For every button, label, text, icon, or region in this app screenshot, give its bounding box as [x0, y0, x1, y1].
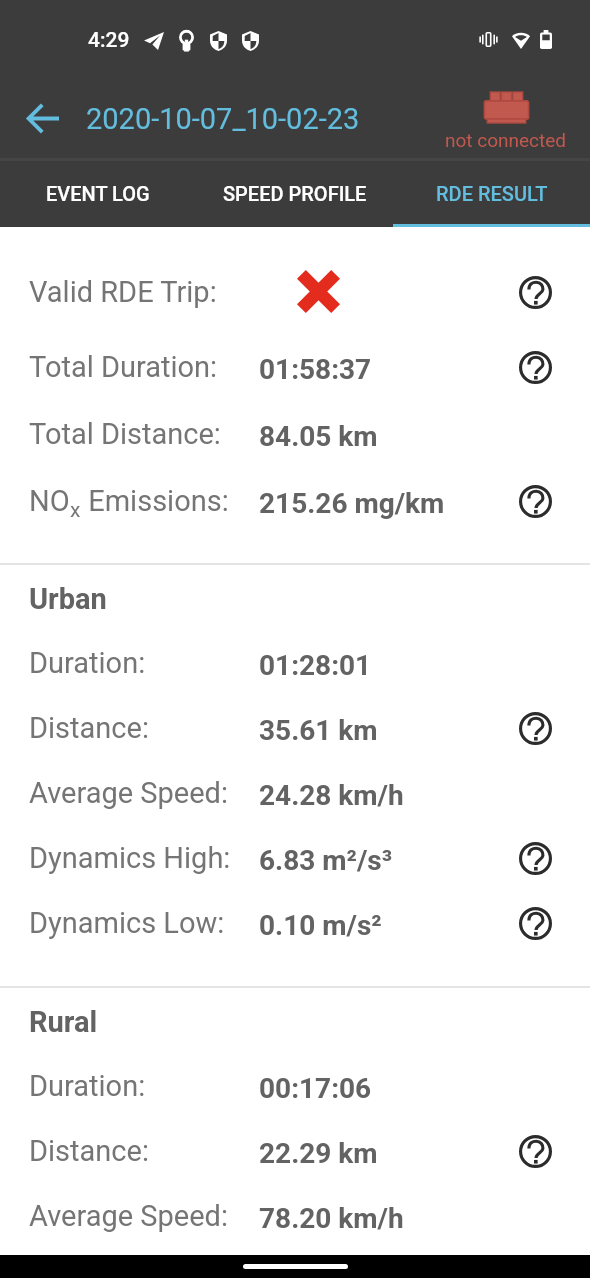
staticText: Emissions: [81, 484, 229, 518]
staticText: 01:58:37 [259, 353, 372, 386]
staticText: Total Duration: [29, 350, 218, 384]
staticText: Average Speed: [29, 776, 228, 810]
staticText: 2020-10-07_10-02-23 [86, 102, 360, 136]
button[interactable]: Average Speed: [0, 760, 590, 825]
staticText: 84.05 km [259, 420, 378, 453]
button[interactable]: RDE RESULT [393, 161, 590, 227]
button[interactable]: Distance: [0, 1118, 590, 1183]
button[interactable]: Help [507, 473, 563, 529]
button[interactable]: Back [0, 75, 86, 161]
button[interactable]: Help [507, 264, 563, 320]
staticText: Rural [29, 1005, 98, 1039]
staticText: 35.61 km [259, 714, 378, 747]
button[interactable]: Help [507, 1123, 563, 1179]
staticText: not connected [445, 129, 567, 151]
button[interactable]: Duration: [0, 630, 590, 695]
button[interactable]: Dynamics High: [0, 825, 590, 890]
button[interactable]: Duration: [0, 1053, 590, 1118]
staticText: Dynamics Low: [29, 906, 225, 940]
button[interactable]: Help [507, 339, 563, 395]
staticText: 00:17:06 [259, 1072, 372, 1105]
staticText: EVENT LOG [46, 182, 150, 205]
staticText: NO [29, 484, 70, 518]
button[interactable]: Total Duration: [0, 333, 590, 400]
staticText: 24.28 km/h [259, 779, 404, 812]
button[interactable]: Help [507, 700, 563, 756]
staticText: 4:29 [88, 28, 130, 53]
staticText: Distance: [29, 1134, 149, 1168]
staticText: 215.26 mg/km [259, 487, 445, 520]
button[interactable]: NO [0, 467, 590, 534]
staticText: RDE RESULT [436, 182, 548, 205]
button[interactable]: EVENT LOG [0, 161, 196, 227]
button[interactable]: Dynamics Low: [0, 890, 590, 955]
staticText: 01:28:01 [259, 649, 372, 682]
staticText: Duration: [29, 1069, 146, 1103]
button[interactable]: Help [507, 895, 563, 951]
staticText: 6.83 m²/s³ [259, 844, 393, 877]
button[interactable]: Distance: [0, 695, 590, 760]
staticText: Average Speed: [29, 1199, 228, 1233]
staticText: Distance: [29, 711, 149, 745]
staticText: SPEED PROFILE [223, 182, 367, 205]
button[interactable]: Average Speed: [0, 1183, 590, 1248]
button[interactable]: Help [507, 830, 563, 886]
staticText: Total Distance: [29, 417, 221, 451]
button[interactable]: Total Distance: [0, 400, 590, 467]
button[interactable]: Connection status [441, 78, 571, 164]
staticText: Dynamics High: [29, 841, 231, 875]
button[interactable]: Valid RDE Trip: [0, 250, 590, 333]
staticText: Urban [29, 582, 107, 616]
staticText: 22.29 km [259, 1137, 378, 1170]
staticText: 78.20 km/h [259, 1202, 404, 1235]
staticText: 0.10 m/s² [259, 909, 382, 942]
staticText: Valid RDE Trip: [29, 275, 217, 309]
button[interactable]: SPEED PROFILE [196, 161, 393, 227]
staticText: Duration: [29, 646, 146, 680]
staticText: x [70, 498, 81, 523]
